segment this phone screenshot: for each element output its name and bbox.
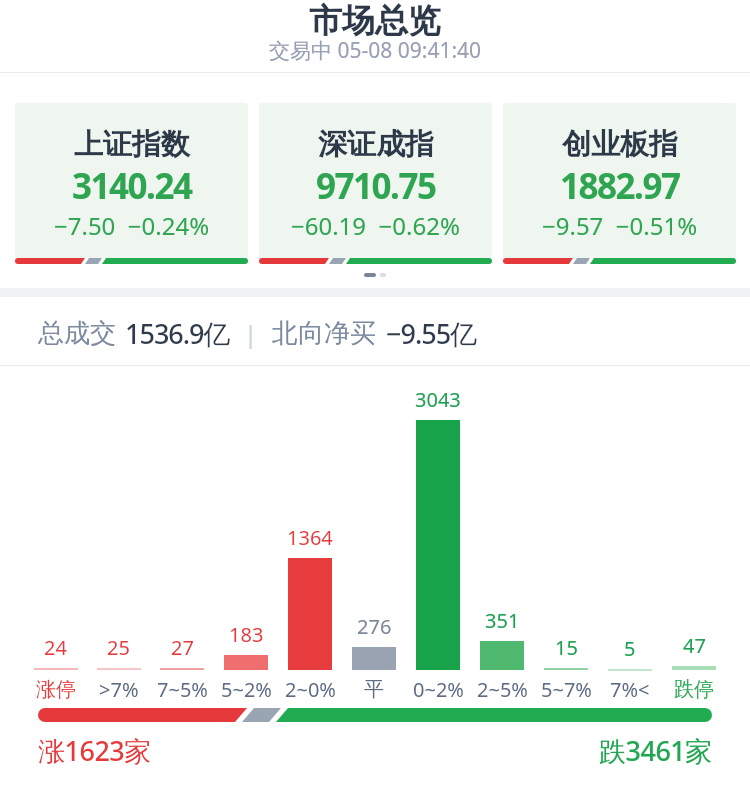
- button[interactable]: 276: [342, 366, 406, 698]
- staticText: 北向净买: [272, 317, 376, 350]
- button[interactable]: 183: [214, 366, 278, 698]
- staticText: 15: [555, 634, 578, 661]
- staticText: 47: [683, 632, 706, 659]
- staticText: 0~2%: [413, 676, 464, 703]
- staticText: 1882.97: [560, 162, 680, 210]
- staticText: >7%: [99, 676, 139, 703]
- staticText: 跌3461家: [599, 732, 712, 769]
- staticText: 1364: [287, 524, 333, 551]
- staticText: 2~5%: [477, 676, 528, 703]
- staticText: 交易中 05-08 09:41:40: [269, 36, 482, 65]
- staticText: |: [244, 317, 258, 350]
- staticText: 24: [44, 634, 67, 661]
- button[interactable]: 24: [24, 366, 87, 698]
- button[interactable]: 总成交: [38, 300, 477, 366]
- staticText: 1536.9亿: [125, 315, 230, 352]
- staticText: 183: [229, 621, 264, 648]
- staticText: 351: [485, 607, 520, 634]
- staticText: 27: [171, 634, 194, 661]
- button[interactable]: 351: [470, 366, 534, 698]
- staticText: 276: [357, 613, 392, 640]
- staticText: 3140.24: [72, 162, 192, 210]
- button[interactable]: 创业板指: [503, 103, 736, 264]
- staticText: 创业板指: [562, 126, 678, 163]
- staticText: 2~0%: [285, 676, 336, 703]
- staticText: 深证成指: [318, 126, 434, 163]
- button[interactable]: 47: [662, 366, 726, 698]
- button[interactable]: 15: [534, 366, 598, 698]
- staticText: 涨停: [36, 677, 76, 702]
- staticText: 5: [624, 635, 636, 662]
- button[interactable]: 25: [87, 366, 150, 698]
- staticText: 市场总览: [309, 0, 441, 42]
- button[interactable]: 上证指数: [15, 103, 248, 264]
- staticText: −9.55亿: [386, 315, 477, 352]
- button[interactable]: 深证成指: [259, 103, 492, 264]
- staticText: 跌停: [674, 677, 714, 702]
- staticText: 25: [107, 634, 130, 661]
- staticText: 3043: [415, 386, 461, 413]
- staticText: −9.57 −0.51%: [542, 209, 698, 242]
- button[interactable]: 3043: [406, 366, 470, 698]
- staticText: 涨1623家: [38, 732, 151, 769]
- staticText: 平: [364, 677, 384, 702]
- staticText: 5~7%: [541, 676, 592, 703]
- staticText: 9710.75: [316, 162, 436, 210]
- staticText: 上证指数: [74, 126, 190, 163]
- staticText: −7.50 −0.24%: [54, 209, 210, 242]
- button[interactable]: 27: [150, 366, 214, 698]
- staticText: 总成交: [38, 317, 116, 350]
- staticText: 7~5%: [157, 676, 208, 703]
- button[interactable]: 1364: [278, 366, 342, 698]
- staticText: 5~2%: [221, 676, 272, 703]
- button[interactable]: 5: [598, 366, 662, 698]
- staticText: −60.19 −0.62%: [291, 209, 460, 242]
- staticText: 7%<: [610, 676, 650, 703]
